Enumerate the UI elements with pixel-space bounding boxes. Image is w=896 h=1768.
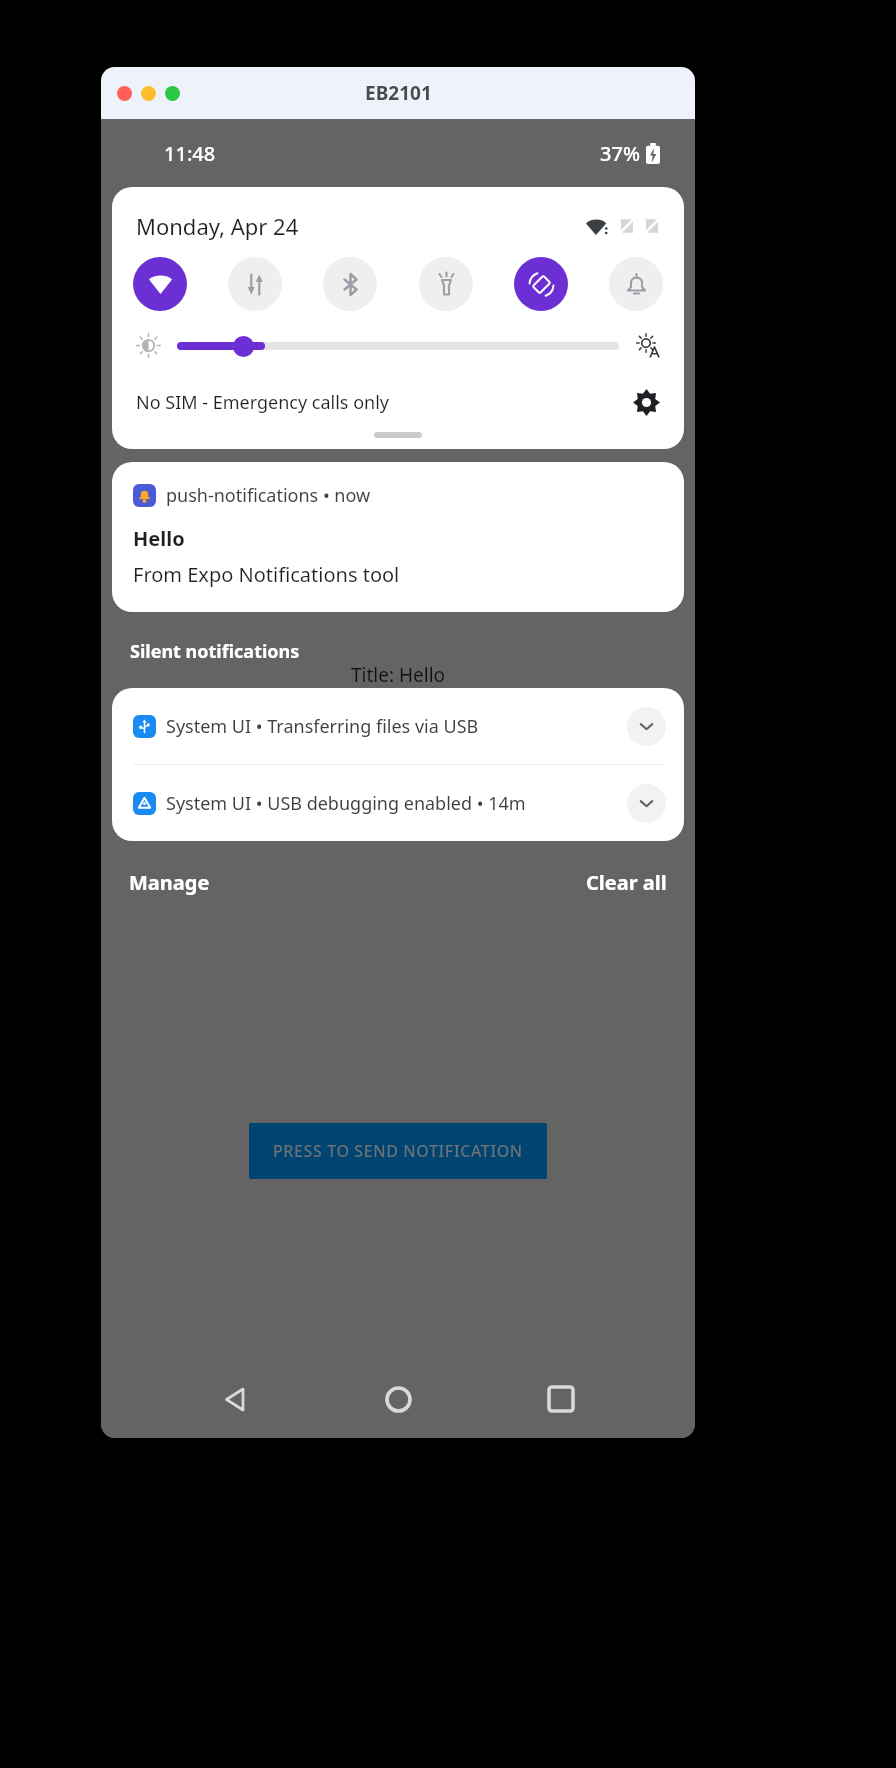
staticText: Title: Hello bbox=[351, 662, 446, 688]
button[interactable]: Close bbox=[117, 86, 132, 101]
staticText: push-notifications • now bbox=[166, 483, 371, 508]
button[interactable]: Settings bbox=[628, 384, 664, 420]
button[interactable]: Recents bbox=[532, 1370, 590, 1428]
button[interactable]: push-notifications • now bbox=[112, 462, 684, 612]
button[interactable]: Mobile data bbox=[228, 257, 282, 311]
staticText: Silent notifications bbox=[130, 639, 300, 664]
button[interactable] bbox=[177, 335, 619, 357]
staticText: No SIM - Emergency calls only bbox=[136, 390, 389, 415]
button[interactable]: System UI • Transferring files via USB bbox=[112, 688, 684, 764]
staticText: Clear all bbox=[586, 869, 667, 896]
button[interactable]: Do not disturb bbox=[609, 257, 663, 311]
button[interactable]: Back bbox=[206, 1370, 264, 1428]
button[interactable]: PRESS TO SEND NOTIFICATION bbox=[249, 1123, 547, 1179]
button[interactable]: Minimize bbox=[141, 86, 156, 101]
staticText: System UI • USB debugging enabled • 14m bbox=[166, 791, 526, 816]
button[interactable]: Maximize bbox=[165, 86, 180, 101]
button[interactable]: Home bbox=[369, 1370, 427, 1428]
button[interactable]: Auto-rotate bbox=[514, 257, 568, 311]
staticText: 37% bbox=[600, 140, 640, 167]
staticText: Hello bbox=[133, 525, 185, 552]
button[interactable]: Expand bbox=[627, 784, 666, 823]
button[interactable]: System UI • USB debugging enabled • 14m bbox=[112, 765, 684, 841]
button[interactable]: Expand bbox=[627, 707, 666, 746]
button[interactable]: Flashlight bbox=[419, 257, 473, 311]
staticText: EB2101 bbox=[365, 80, 432, 106]
staticText: From Expo Notifications tool bbox=[133, 561, 400, 588]
button[interactable]: Clear all bbox=[583, 866, 670, 899]
staticText: System UI • Transferring files via USB bbox=[166, 714, 479, 739]
staticText: Manage bbox=[129, 869, 210, 896]
button[interactable]: Wi-Fi bbox=[133, 257, 187, 311]
button[interactable]: Manage bbox=[126, 866, 213, 899]
button[interactable]: Bluetooth bbox=[323, 257, 377, 311]
staticText: PRESS TO SEND NOTIFICATION bbox=[273, 1140, 523, 1162]
button[interactable] bbox=[374, 432, 422, 438]
staticText: 11:48 bbox=[164, 140, 216, 167]
staticText: Monday, Apr 24 bbox=[136, 211, 299, 241]
